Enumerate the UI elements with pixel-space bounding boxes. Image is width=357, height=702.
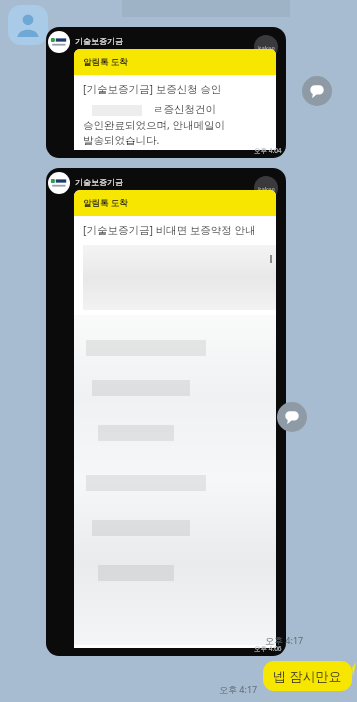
button[interactable]: 기술보증기금 [46,168,286,656]
staticText: ㄹ증신청건이 [153,103,216,116]
staticText: 넵 잠시만요 [273,667,342,685]
staticText: 기술보증기금 [75,177,123,187]
staticText: 오후 4:06 [254,644,282,653]
staticText: 승인완료되었으며, 안내메일이 [83,118,226,132]
staticText: 기술보증기금 [75,36,123,46]
button[interactable]: Open chat [302,76,332,106]
staticText: 오후 4:17 [265,634,304,646]
button[interactable]: Open chat [277,402,307,432]
staticText: 알림톡 도착 [83,197,128,209]
staticText: 알림톡 도착 [83,56,128,68]
staticText: kakao [258,185,275,192]
staticText: [기술보증기금] 보증신청 승인 [83,82,222,96]
button[interactable]: Profile photo [8,5,48,45]
staticText: kakao [258,44,275,51]
staticText: [기술보증기금] 비대면 보증약정 안내 [83,223,256,237]
staticText: 오후 4:04 [254,146,282,155]
staticText: 발송되었습니다. [83,133,160,147]
button[interactable]: 넵 잠시만요 [263,661,356,691]
staticText: 오후 4:17 [219,683,258,695]
button[interactable]: 기술보증기금 [46,27,286,158]
